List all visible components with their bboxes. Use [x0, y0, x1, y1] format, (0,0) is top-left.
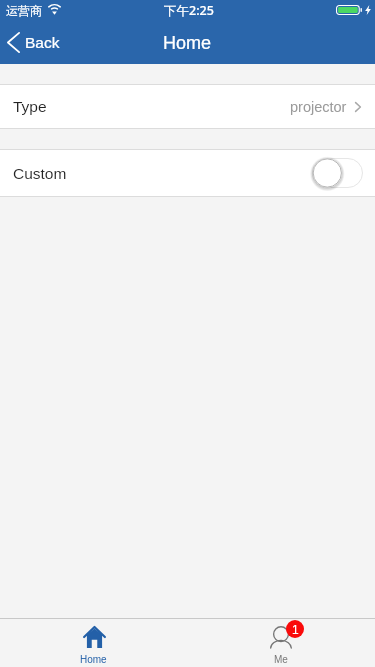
staticText: Type	[13, 98, 47, 115]
staticText: Home	[163, 33, 212, 53]
staticText: 下午2:25	[164, 2, 214, 19]
staticText: Back	[25, 34, 60, 51]
staticText: Home	[80, 654, 107, 665]
button[interactable]: 1	[187, 619, 375, 667]
button[interactable]: Custom	[0, 150, 375, 196]
button[interactable]: Home	[0, 619, 187, 667]
staticText: projector	[290, 99, 347, 115]
staticText: Custom	[13, 165, 67, 182]
button[interactable]: Back	[0, 20, 72, 64]
staticText: 1	[292, 623, 299, 636]
staticText: Me	[274, 654, 288, 665]
staticText: 运营商	[6, 3, 42, 18]
button[interactable]: Custom toggle	[312, 158, 363, 188]
button[interactable]: Type	[0, 85, 375, 128]
